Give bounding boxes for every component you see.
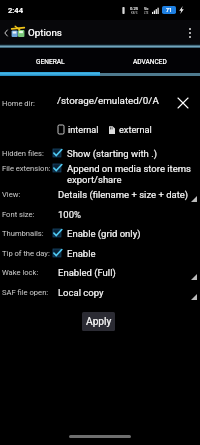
- button[interactable]: ADVANCED: [100, 48, 200, 76]
- staticText: Append on media store items export/share: [67, 163, 200, 185]
- button[interactable]: Home dir:: [0, 95, 200, 113]
- staticText: KB/S: [131, 11, 138, 14]
- staticText: Hidden files:: [2, 149, 44, 158]
- staticText: Tip of the day:: [2, 249, 50, 258]
- button[interactable]: external: [109, 121, 152, 137]
- staticText: Wake lock:: [2, 268, 39, 277]
- staticText: LTE: [144, 11, 149, 14]
- staticText: Enabled (Full): [58, 267, 116, 278]
- staticText: Options: [28, 27, 62, 38]
- staticText: Home dir:: [2, 99, 35, 108]
- button[interactable]: internal: [58, 121, 99, 137]
- staticText: Show (starting with .): [67, 148, 200, 159]
- staticText: Apply: [86, 316, 112, 328]
- staticText: 71: [166, 7, 172, 13]
- button[interactable]: Clear home dir: [175, 95, 191, 111]
- staticText: internal: [68, 124, 99, 135]
- button[interactable]: Apply: [82, 312, 115, 331]
- staticText: Enable: [67, 248, 200, 259]
- staticText: Details (filename + size + date): [58, 189, 189, 200]
- staticText: View:: [2, 190, 21, 199]
- button[interactable]: Thumbnails:: [0, 228, 200, 239]
- button[interactable]: GENERAL: [0, 48, 100, 76]
- button[interactable]: File extension:: [0, 163, 200, 185]
- staticText: File extension:: [2, 164, 51, 173]
- button[interactable]: Tip of the day:: [0, 248, 200, 259]
- staticText: external: [119, 124, 152, 135]
- staticText: 2:44: [8, 6, 23, 15]
- staticText: Enable (grid only): [67, 228, 200, 239]
- button[interactable]: Font size:: [0, 206, 200, 222]
- staticText: ADVANCED: [133, 58, 167, 66]
- staticText: 100%: [58, 209, 81, 220]
- staticText: Local copy: [58, 287, 104, 298]
- button[interactable]: More options: [180, 20, 200, 45]
- staticText: /storage/emulated/0/A: [57, 95, 159, 106]
- staticText: Thumbnails:: [2, 229, 44, 238]
- staticText: Vo: [144, 7, 149, 11]
- button[interactable]: Wake lock:: [0, 264, 200, 280]
- button[interactable]: Hidden files:: [0, 148, 200, 159]
- button[interactable]: Back: [0, 20, 11, 45]
- staticText: GENERAL: [36, 58, 65, 66]
- staticText: SAF file open:: [2, 288, 49, 297]
- button[interactable]: View:: [0, 186, 200, 202]
- button[interactable]: SAF file open:: [0, 284, 200, 300]
- staticText: Font size:: [2, 210, 35, 219]
- staticText: 0.25: [130, 6, 139, 11]
